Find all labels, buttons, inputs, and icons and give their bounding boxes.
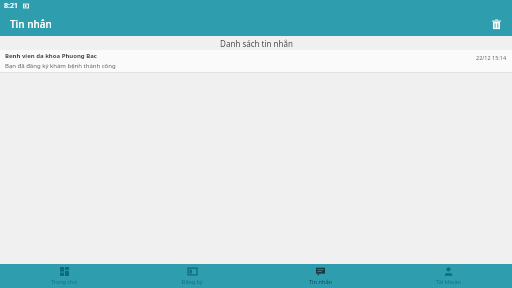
staticText: 22/12 15:14 (476, 54, 507, 61)
button[interactable]: Benh vien da khoa Phuong Bac (0, 50, 512, 73)
staticText: Tin nhắn (309, 278, 332, 285)
staticText: 8:21 (4, 1, 18, 11)
staticText: Danh sách tin nhắn (220, 38, 293, 49)
staticText: Tin nhắn (10, 17, 52, 31)
staticText: Benh vien da khoa Phuong Bac (5, 52, 97, 60)
staticText: Tài khoản (436, 278, 461, 285)
button[interactable]: Trang chủ (0, 264, 128, 288)
button[interactable]: Tin nhắn (256, 264, 384, 288)
button[interactable]: Đăng ký (128, 264, 256, 288)
button[interactable]: Tài khoản (384, 264, 512, 288)
staticText: Đăng ký (181, 278, 203, 285)
staticText: Bạn đã đăng ký khám bệnh thành công (5, 62, 116, 70)
button[interactable]: Xóa tất cả tin nhắn (486, 14, 506, 34)
staticText: Trang chủ (51, 278, 77, 285)
